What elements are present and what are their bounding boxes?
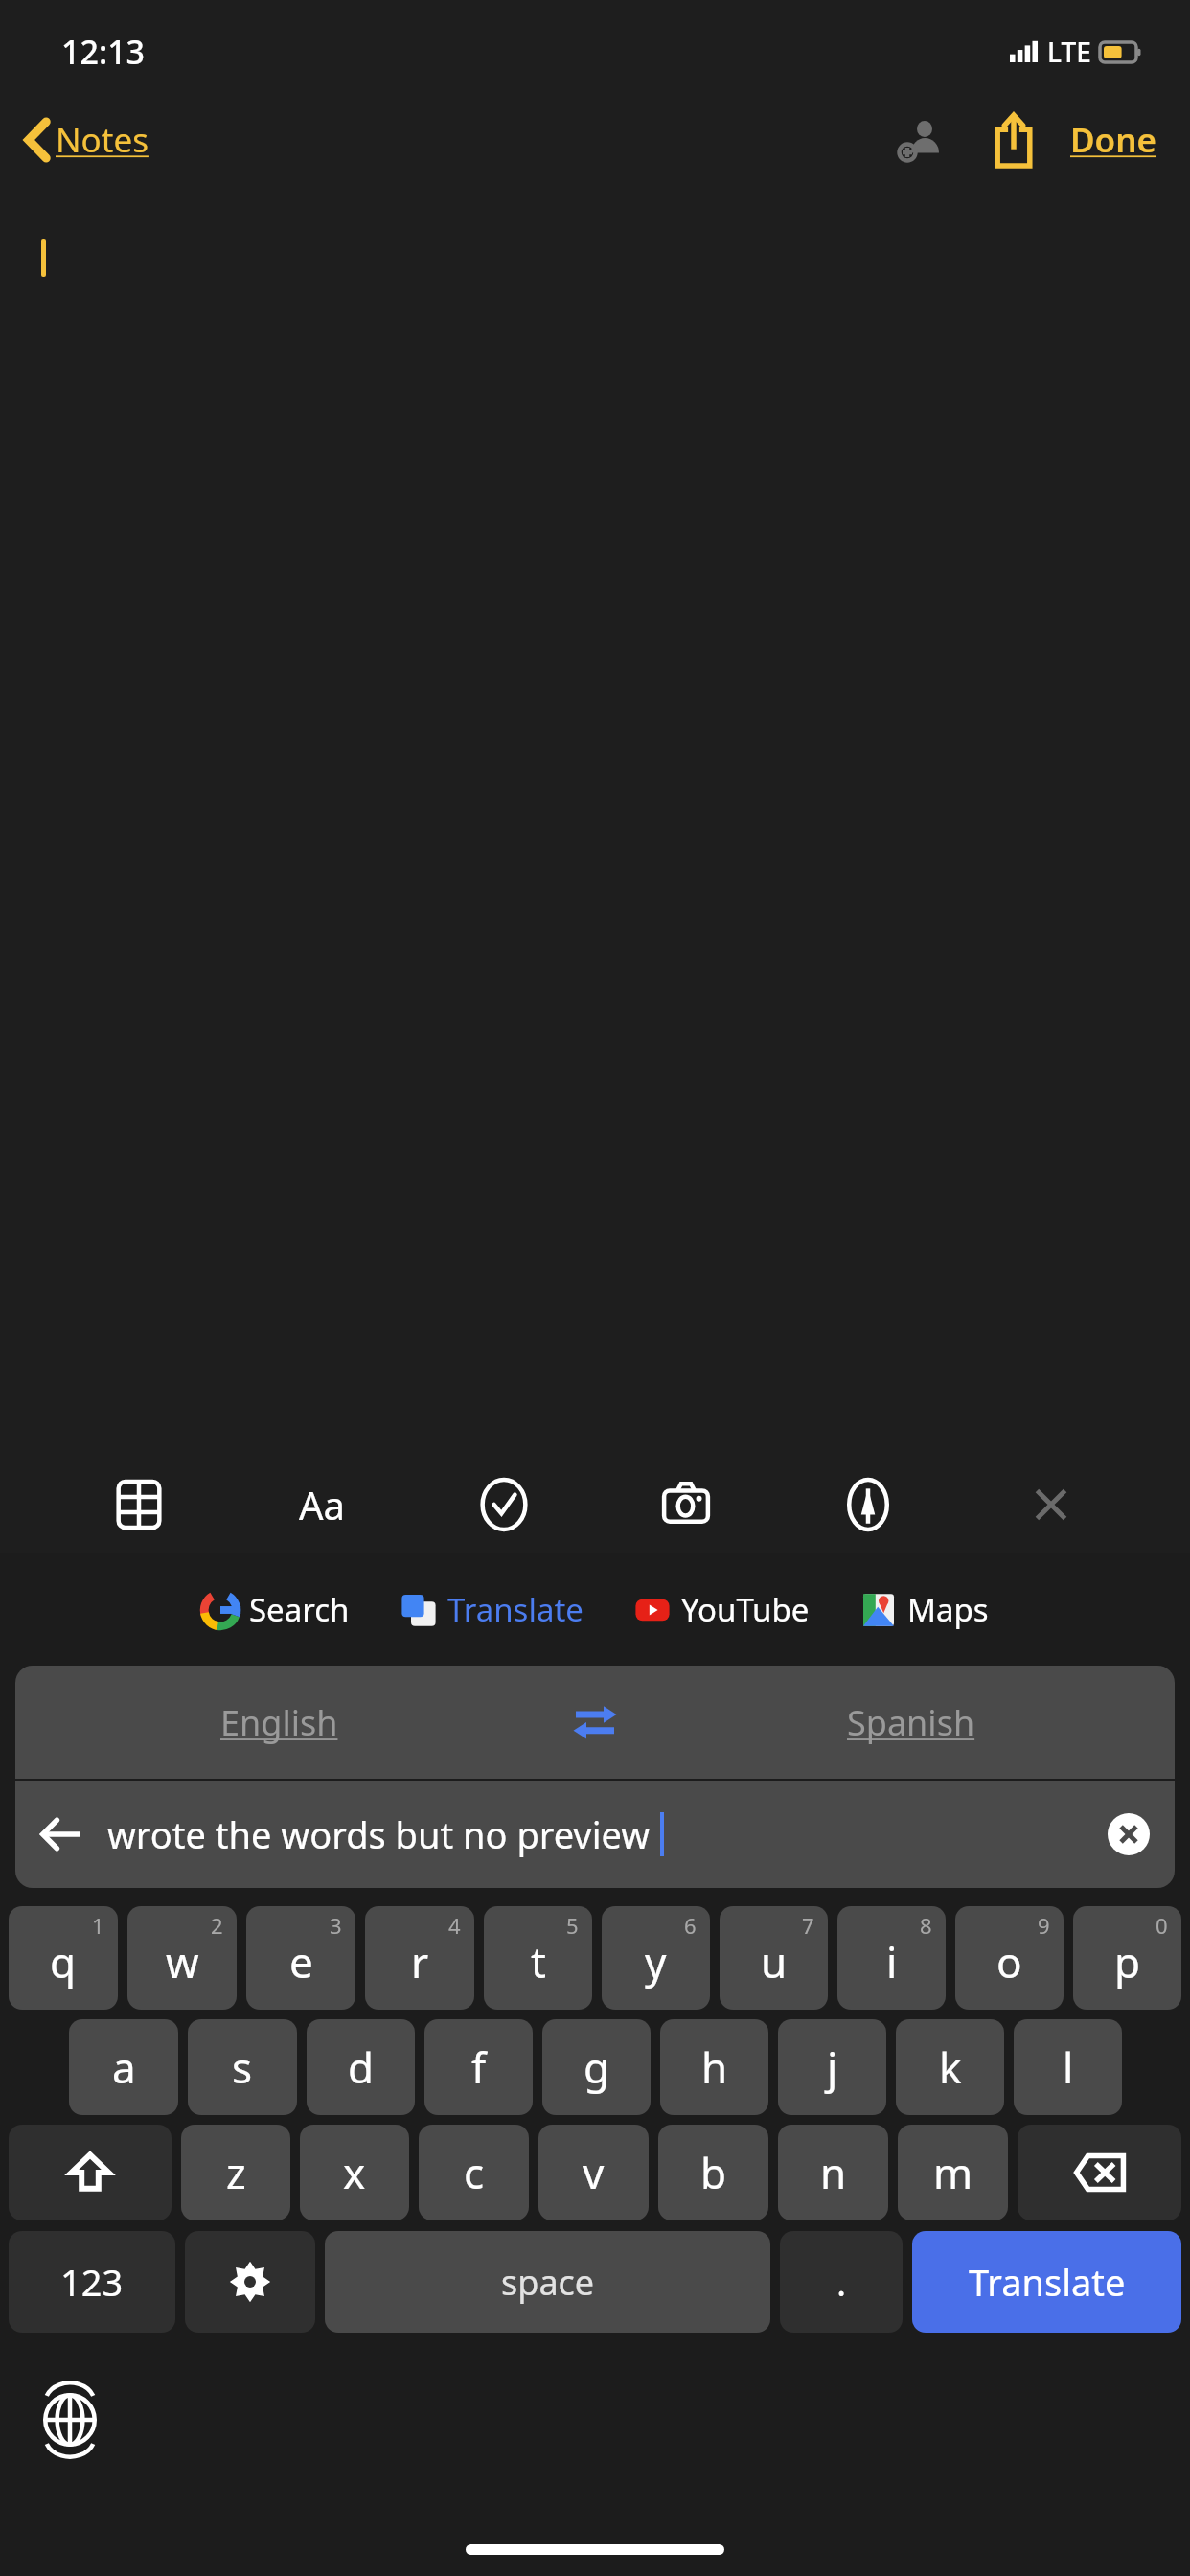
button[interactable]: Settings <box>185 2231 315 2333</box>
staticText: f <box>471 2038 487 2096</box>
staticText: 4 <box>448 1911 461 1940</box>
staticText: t <box>531 1933 546 1990</box>
staticText: 12:13 <box>61 30 146 74</box>
button[interactable]: Share <box>976 103 1051 177</box>
button[interactable]: Backspace <box>1018 2125 1181 2220</box>
button[interactable]: 6 <box>602 1906 710 2010</box>
button[interactable]: Aa <box>279 1461 365 1548</box>
button[interactable]: v <box>538 2125 649 2220</box>
staticText: Done <box>1070 117 1157 163</box>
staticText: 6 <box>684 1911 697 1940</box>
button[interactable]: 7 <box>720 1906 828 2010</box>
staticText: Aa <box>299 1479 345 1530</box>
staticText: LTE <box>1047 34 1091 70</box>
staticText: m <box>933 2144 973 2201</box>
button[interactable]: 1 <box>9 1906 118 2010</box>
staticText: 3 <box>330 1911 342 1940</box>
staticText: a <box>112 2038 136 2096</box>
button[interactable]: Maps <box>856 1578 993 1641</box>
staticText: u <box>761 1933 788 1990</box>
staticText: o <box>996 1933 1022 1990</box>
button[interactable]: k <box>896 2019 1004 2115</box>
staticText: Maps <box>907 1588 989 1631</box>
staticText: l <box>1063 2038 1074 2096</box>
staticText: b <box>700 2144 727 2201</box>
button[interactable]: Translate <box>912 2231 1181 2333</box>
staticText: z <box>226 2144 246 2201</box>
staticText: y <box>645 1933 667 1990</box>
button[interactable]: l <box>1014 2019 1122 2115</box>
staticText: YouTube <box>681 1588 810 1631</box>
button[interactable]: Change keyboard language <box>29 2379 111 2461</box>
button[interactable]: 2 <box>127 1906 237 2010</box>
staticText: r <box>411 1933 429 1990</box>
staticText: i <box>886 1933 898 1990</box>
button[interactable]: d <box>307 2019 415 2115</box>
staticText: e <box>289 1933 313 1990</box>
button[interactable]: s <box>188 2019 297 2115</box>
staticText: c <box>464 2144 485 2201</box>
button[interactable]: space <box>325 2231 770 2333</box>
button[interactable]: 3 <box>246 1906 355 2010</box>
button[interactable]: Clear text <box>1083 1788 1175 1880</box>
button[interactable]: m <box>898 2125 1008 2220</box>
staticText: Spanish <box>847 1699 975 1746</box>
button[interactable]: 123 <box>9 2231 175 2333</box>
button[interactable]: YouTube <box>629 1578 813 1641</box>
button[interactable]: Swap languages <box>542 1666 648 1779</box>
button[interactable]: English <box>15 1666 542 1779</box>
staticText: w <box>166 1933 199 1990</box>
staticText: 0 <box>1156 1911 1168 1940</box>
staticText: d <box>348 2038 375 2096</box>
button[interactable]: Table <box>96 1461 182 1548</box>
button[interactable]: h <box>660 2019 768 2115</box>
button[interactable]: Notes <box>19 111 156 169</box>
button[interactable]: Translate <box>396 1578 587 1641</box>
staticText: s <box>232 2038 253 2096</box>
staticText: Translate <box>447 1588 584 1631</box>
button[interactable]: x <box>300 2125 409 2220</box>
button[interactable]: 5 <box>484 1906 592 2010</box>
button[interactable]: Close Keyboard <box>1008 1461 1094 1548</box>
staticText: 5 <box>566 1911 579 1940</box>
button[interactable]: Camera <box>643 1461 729 1548</box>
staticText: v <box>583 2144 605 2201</box>
button[interactable]: 0 <box>1073 1906 1181 2010</box>
button[interactable]: Done <box>1061 109 1167 171</box>
button[interactable]: Markup <box>825 1461 911 1548</box>
staticText: q <box>50 1933 77 1990</box>
button[interactable]: Spanish <box>648 1666 1175 1779</box>
button[interactable]: Back <box>15 1788 107 1880</box>
button[interactable]: n <box>778 2125 888 2220</box>
staticText: 1 <box>92 1911 104 1940</box>
staticText: space <box>501 2259 595 2306</box>
staticText: wrote the words but no preview <box>107 1809 651 1859</box>
staticText: English <box>220 1699 338 1746</box>
staticText: g <box>584 2038 610 2096</box>
button[interactable]: Shift <box>9 2125 172 2220</box>
staticText: . <box>836 2257 847 2307</box>
staticText: x <box>343 2144 366 2201</box>
staticText: 2 <box>211 1911 223 1940</box>
staticText: 7 <box>802 1911 814 1940</box>
staticText: p <box>1114 1933 1141 1990</box>
staticText: j <box>827 2038 838 2096</box>
staticText: Notes <box>56 117 149 163</box>
staticText: Search <box>249 1588 350 1631</box>
button[interactable]: 8 <box>837 1906 946 2010</box>
button[interactable]: Checklist <box>461 1461 547 1548</box>
button[interactable]: g <box>542 2019 651 2115</box>
button[interactable]: 9 <box>955 1906 1064 2010</box>
button[interactable]: . <box>780 2231 903 2333</box>
button[interactable]: b <box>658 2125 768 2220</box>
staticText: h <box>701 2038 728 2096</box>
button[interactable]: z <box>181 2125 290 2220</box>
button[interactable]: 4 <box>365 1906 474 2010</box>
staticText: n <box>820 2144 847 2201</box>
button[interactable]: c <box>419 2125 529 2220</box>
button[interactable]: j <box>778 2019 886 2115</box>
button[interactable]: Search <box>197 1578 354 1641</box>
button[interactable]: f <box>424 2019 533 2115</box>
button[interactable]: Add People <box>884 103 959 177</box>
button[interactable]: a <box>69 2019 178 2115</box>
